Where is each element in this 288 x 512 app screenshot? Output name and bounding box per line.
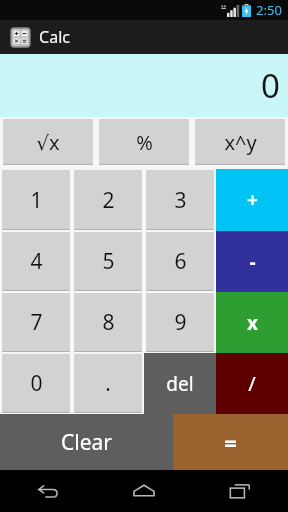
button[interactable]: - (216, 231, 288, 292)
staticText: 2:50 (256, 1, 282, 19)
button[interactable]: = (173, 414, 288, 470)
button[interactable]: Recent apps (192, 470, 288, 512)
staticText: 0 (261, 63, 280, 108)
staticText: 6 (174, 247, 187, 276)
button[interactable]: Back (0, 470, 96, 512)
staticText: - (249, 249, 256, 275)
button[interactable]: del (144, 353, 216, 414)
button[interactable]: % (99, 119, 189, 165)
button[interactable]: 1 (2, 170, 70, 230)
staticText: √x (36, 129, 60, 156)
staticText: x (247, 310, 258, 336)
staticText: / (248, 370, 256, 397)
staticText: 0 (30, 369, 43, 398)
button[interactable]: 4 (2, 232, 70, 291)
staticText: x^y (224, 129, 257, 156)
staticText: 3 (174, 186, 187, 215)
button[interactable]: x (216, 292, 288, 353)
staticText: Clear (61, 428, 112, 457)
button[interactable]: 0 (2, 354, 70, 413)
button[interactable]: Clear (0, 414, 173, 470)
button[interactable]: 9 (146, 293, 214, 352)
button[interactable]: x^y (195, 119, 285, 165)
button[interactable]: 6 (146, 232, 214, 291)
staticText: 4 (30, 247, 43, 276)
staticText: + (247, 187, 258, 213)
button[interactable]: 2 (74, 170, 142, 230)
staticText: 2 (102, 186, 115, 215)
button[interactable]: 8 (74, 293, 142, 352)
staticText: del (166, 371, 194, 397)
staticText: Calc (39, 26, 70, 48)
staticText: 8 (102, 308, 115, 337)
staticText: 7 (30, 308, 43, 337)
button[interactable]: Home (96, 470, 192, 512)
staticText: 1 (30, 186, 43, 215)
staticText: 5 (102, 247, 115, 276)
staticText: = (224, 427, 237, 457)
staticText: % (136, 129, 153, 156)
button[interactable]: 3 (146, 170, 214, 230)
button[interactable]: 5 (74, 232, 142, 291)
button[interactable]: 7 (2, 293, 70, 352)
button[interactable]: . (74, 354, 142, 413)
button[interactable]: / (216, 353, 288, 414)
button[interactable]: + (216, 169, 288, 231)
button[interactable]: √x (3, 119, 93, 165)
staticText: 9 (174, 308, 187, 337)
staticText: . (105, 369, 111, 398)
